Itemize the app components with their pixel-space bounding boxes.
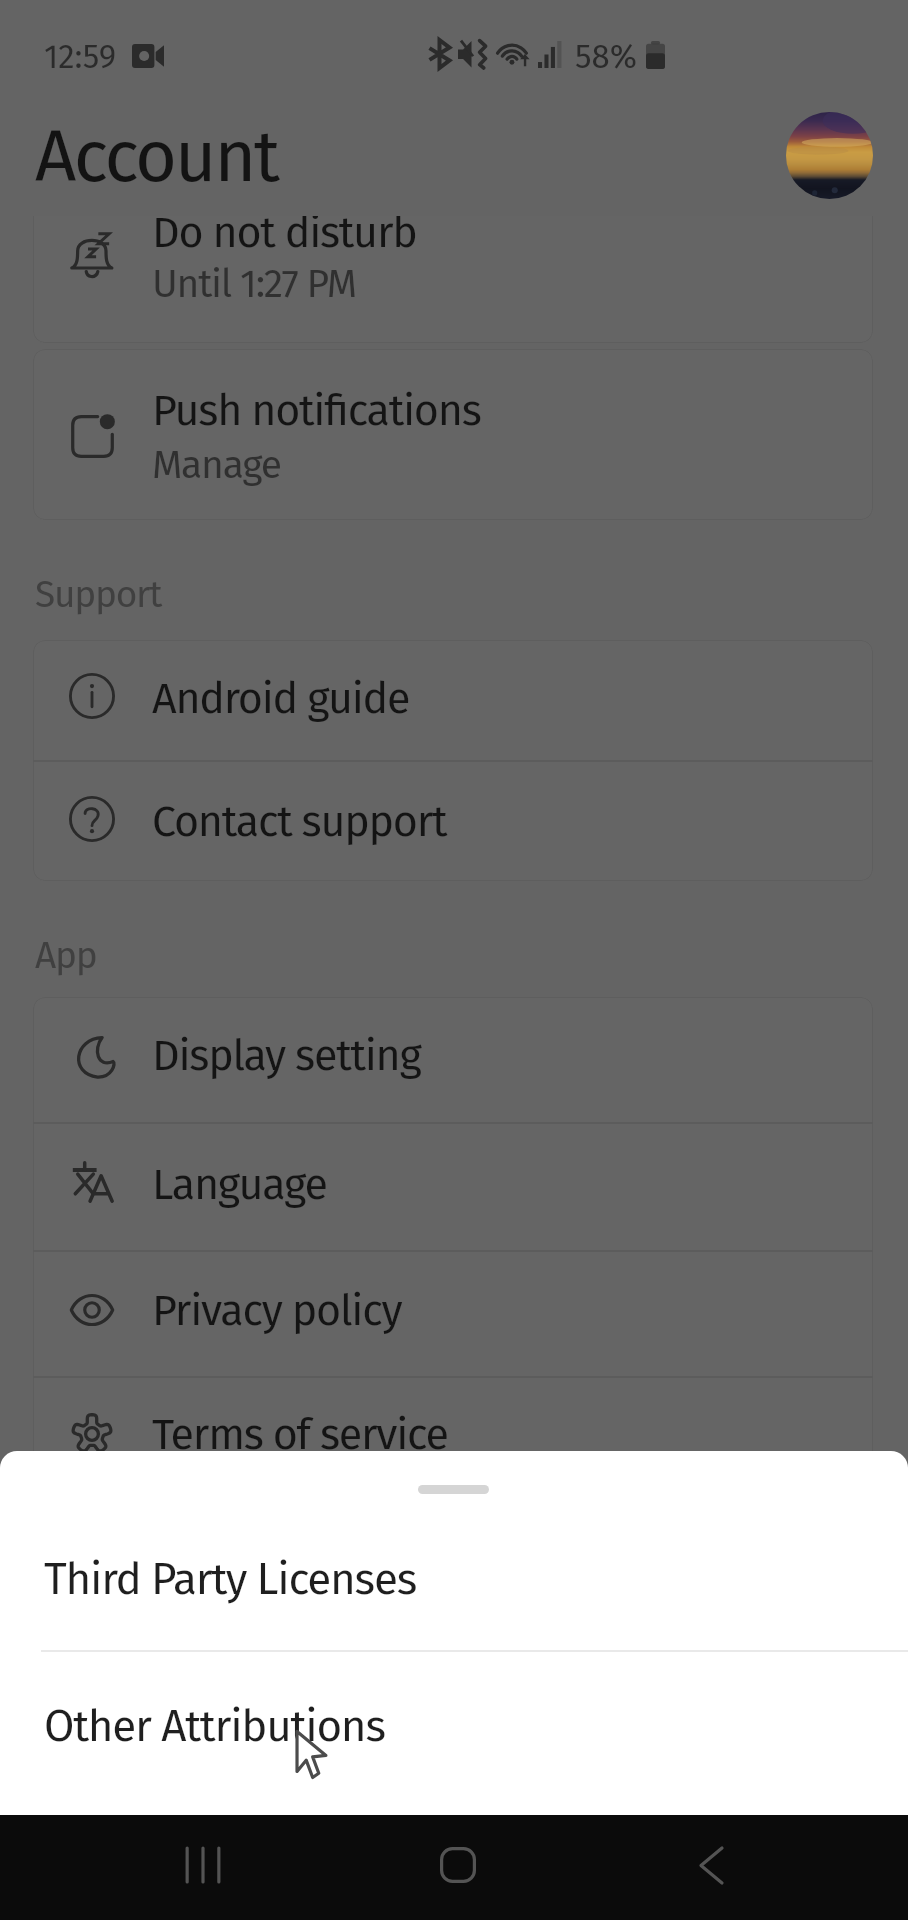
- button[interactable]: Language: [33, 1123, 873, 1250]
- button[interactable]: Terms of service: [33, 1377, 873, 1500]
- button[interactable]: Contact support: [33, 761, 873, 881]
- button[interactable]: Other Attributions: [0, 1651, 908, 1799]
- button[interactable]: Display setting: [33, 997, 873, 1122]
- staticText: Account: [35, 114, 278, 200]
- staticText: Manage: [152, 442, 281, 489]
- staticText: Terms of service: [152, 1409, 448, 1461]
- button[interactable]: Android guide: [33, 640, 873, 760]
- button[interactable]: Home: [408, 1820, 508, 1920]
- staticText: Do not disturb: [152, 207, 417, 259]
- staticText: Support: [35, 572, 162, 616]
- button[interactable]: Third Party Licenses: [0, 1512, 908, 1651]
- staticText: Privacy policy: [152, 1285, 402, 1337]
- staticText: Language: [152, 1159, 327, 1211]
- staticText: App: [35, 933, 97, 977]
- button[interactable]: Privacy policy: [33, 1251, 873, 1376]
- button[interactable]: Do not disturb: [33, 168, 873, 343]
- staticText: Third Party Licenses: [44, 1553, 416, 1606]
- staticText: Android guide: [152, 673, 410, 725]
- staticText: Display setting: [152, 1030, 421, 1082]
- button[interactable]: Recent apps: [154, 1820, 254, 1920]
- staticText: Push notifications: [152, 385, 481, 437]
- staticText: 12:59: [44, 37, 117, 77]
- button[interactable]: Push notifications: [33, 349, 873, 520]
- staticText: Until 1:27 PM: [152, 261, 356, 308]
- staticText: Other Attributions: [44, 1700, 385, 1753]
- button[interactable]: Back: [662, 1820, 762, 1920]
- button[interactable]: Profile photo: [786, 112, 873, 199]
- staticText: Contact support: [152, 796, 447, 848]
- staticText: 58%: [575, 37, 637, 77]
